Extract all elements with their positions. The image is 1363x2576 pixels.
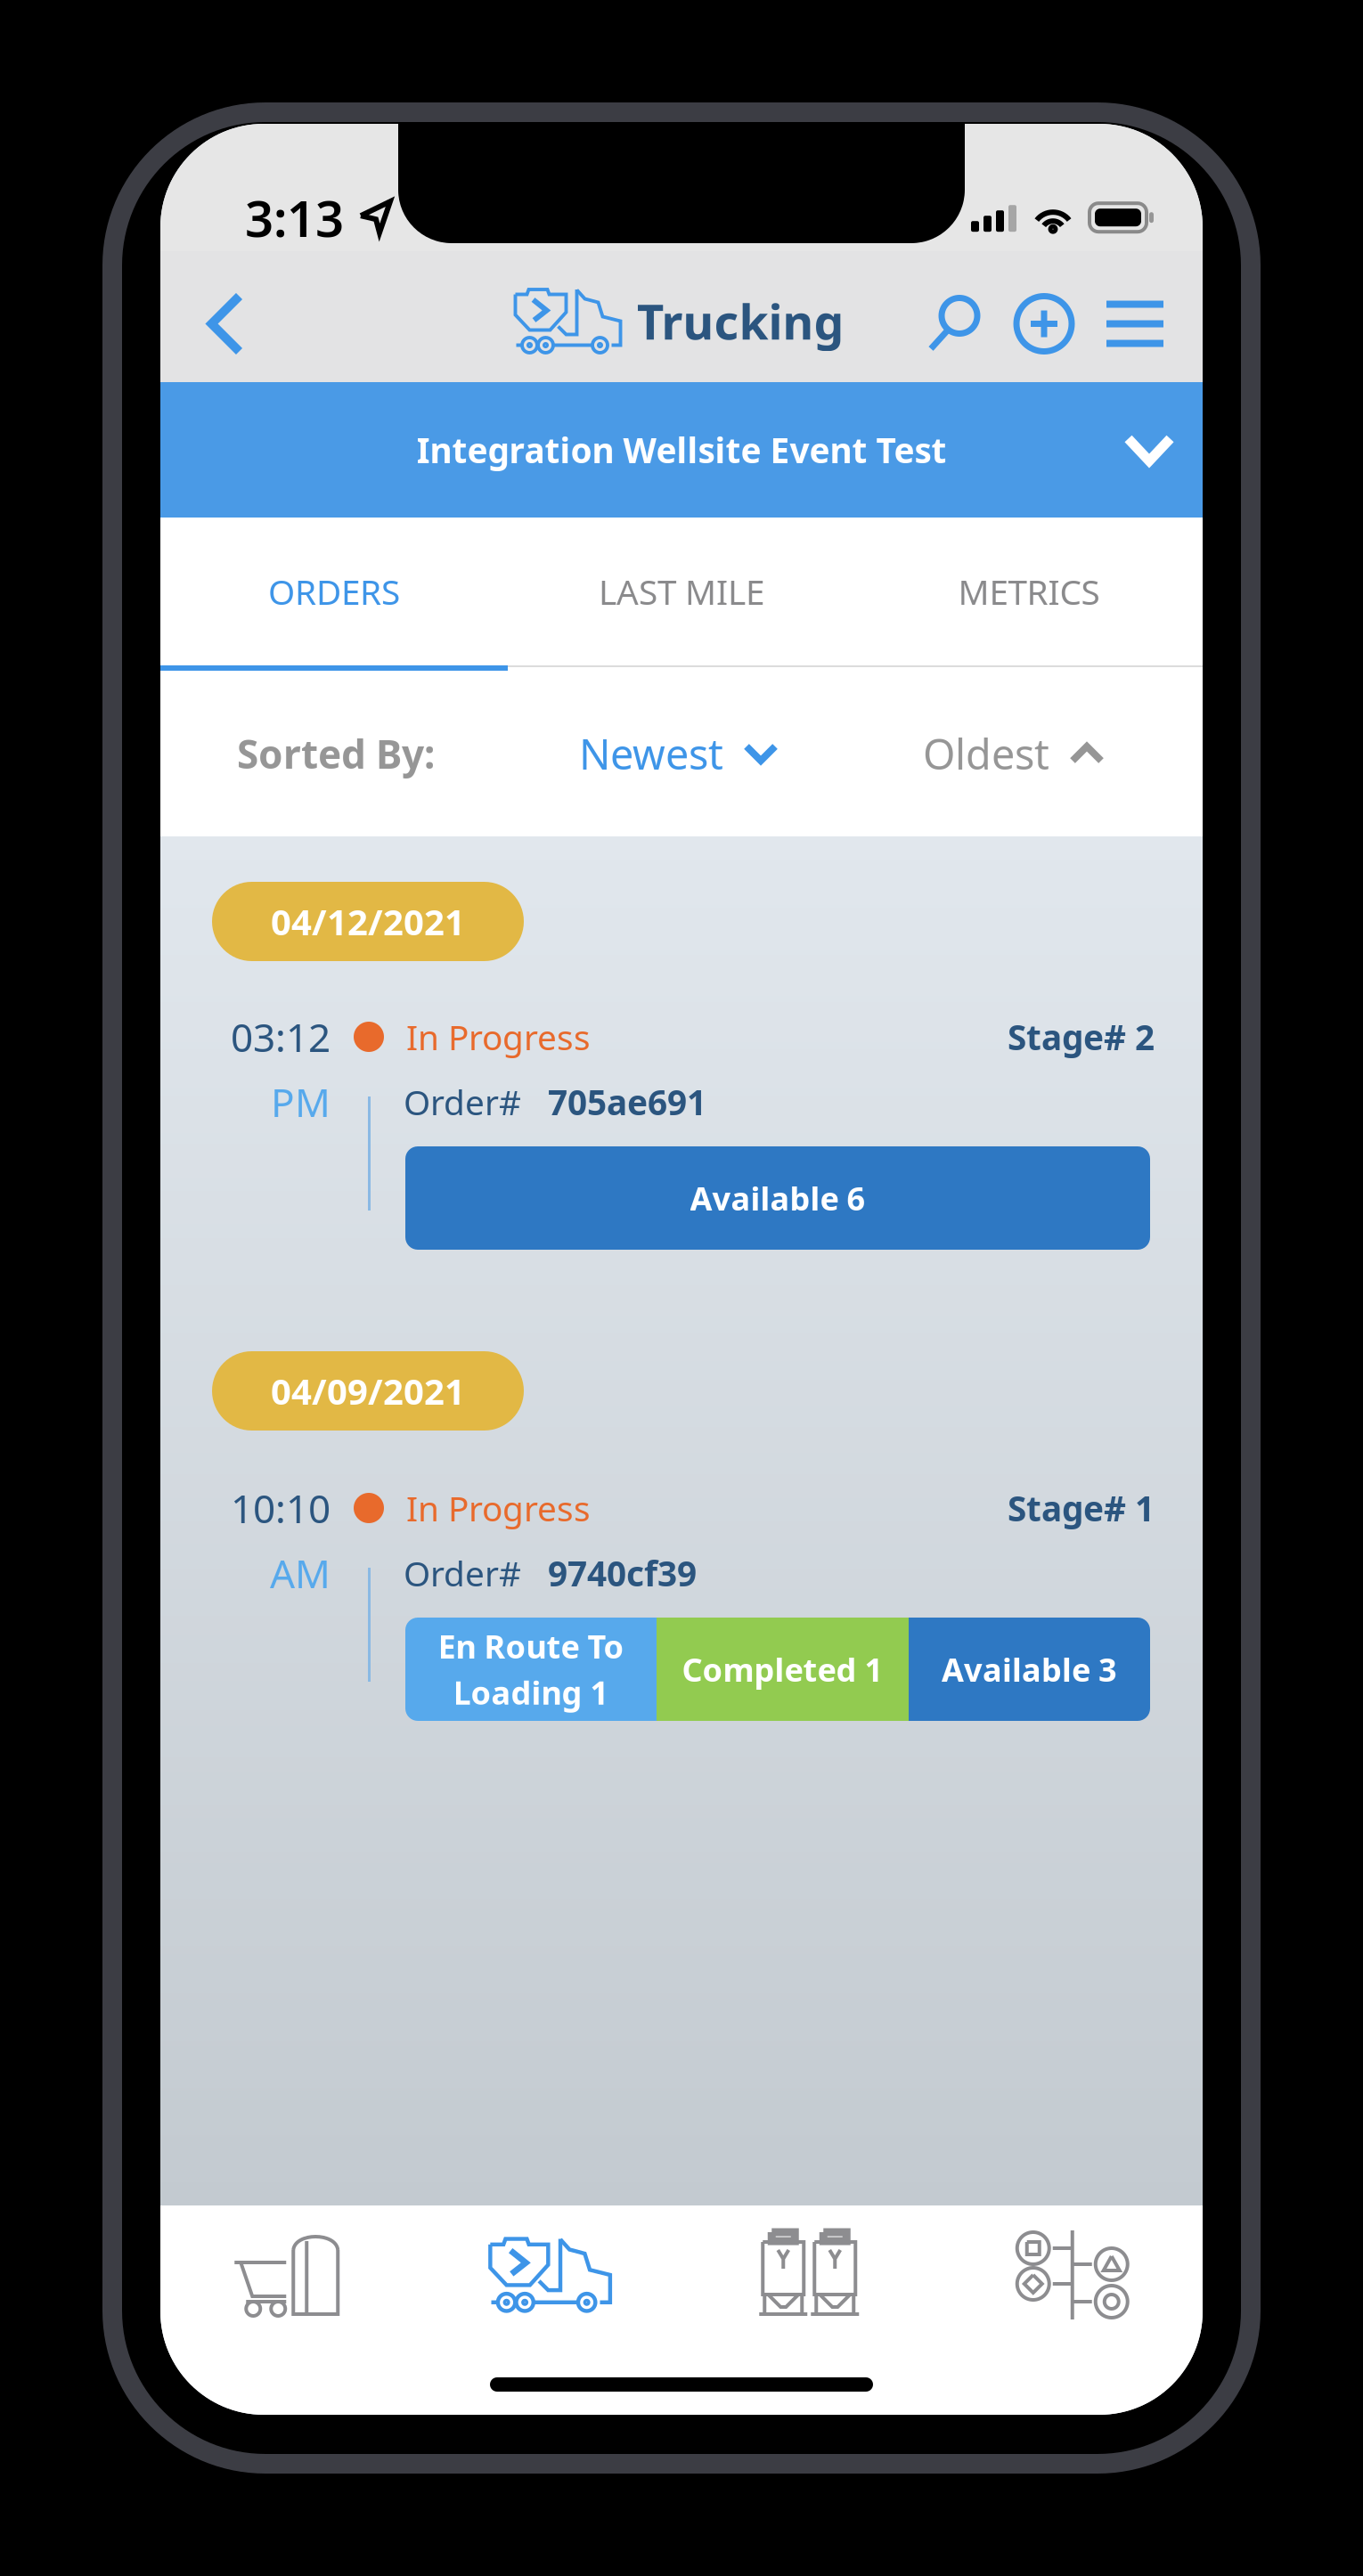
staticText: En Route To — [438, 1625, 624, 1667]
button[interactable]: Trucking — [421, 2220, 681, 2330]
staticText: Loading 1 — [453, 1671, 609, 1714]
staticText: Trucking — [637, 290, 844, 353]
staticText: Order# — [404, 1550, 521, 1596]
button[interactable]: ORDERS — [160, 518, 508, 665]
staticText: METRICS — [958, 569, 1100, 614]
button[interactable]: Oldest — [923, 726, 1105, 781]
staticText: Available 3 — [942, 1648, 1117, 1691]
staticText: 04/12/2021 — [271, 898, 465, 945]
staticText: AM — [270, 1547, 331, 1599]
button[interactable]: Back — [183, 266, 268, 382]
button[interactable]: METRICS — [855, 518, 1203, 665]
staticText: 03:12 — [231, 1011, 331, 1063]
staticText: 3:13 — [245, 184, 344, 251]
staticText: 705ae691 — [548, 1079, 706, 1125]
staticText: Order# — [404, 1079, 521, 1125]
staticText: 04/09/2021 — [271, 1367, 465, 1414]
staticText: Stage# 1 — [1008, 1485, 1155, 1531]
button[interactable]: Network — [942, 2220, 1203, 2330]
staticText: Integration Wellsite Event Test — [416, 427, 947, 473]
staticText: Completed 1 — [682, 1648, 883, 1691]
button[interactable]: LAST MILE — [508, 518, 855, 665]
staticText: 9740cf39 — [548, 1550, 697, 1596]
staticText: PM — [271, 1076, 331, 1128]
button[interactable]: Search — [917, 274, 990, 374]
staticText: Newest — [579, 726, 723, 781]
staticText: Oldest — [923, 726, 1049, 781]
staticText: In Progress — [406, 1485, 591, 1531]
staticText: In Progress — [406, 1014, 591, 1060]
staticText: 10:10 — [231, 1482, 331, 1534]
button[interactable]: Newest — [579, 726, 779, 781]
button[interactable]: Silos — [681, 2220, 942, 2330]
button[interactable]: Integration Wellsite Event Test — [160, 382, 1203, 518]
staticText: Sorted By: — [237, 728, 435, 780]
button[interactable]: Menu — [1098, 274, 1171, 374]
staticText: Stage# 2 — [1008, 1014, 1155, 1060]
staticText: Available 6 — [690, 1177, 865, 1219]
button[interactable]: Add — [1008, 274, 1081, 374]
staticText: LAST MILE — [599, 569, 764, 614]
button[interactable]: Orders — [160, 2220, 421, 2330]
staticText: ORDERS — [268, 569, 400, 614]
